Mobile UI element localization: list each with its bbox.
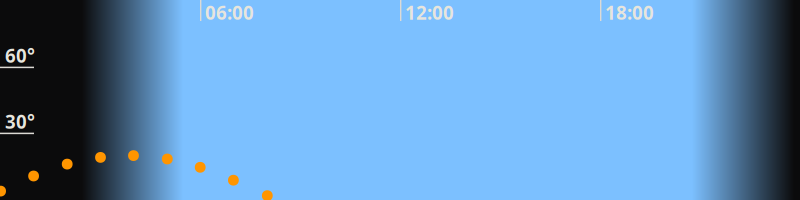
button[interactable]: Sun elevation chart [0, 0, 800, 200]
staticText: 60° [5, 43, 35, 68]
staticText: 18:00 [605, 0, 654, 25]
staticText: 12:00 [405, 0, 454, 25]
staticText: 06:00 [205, 0, 254, 25]
staticText: 30° [5, 109, 35, 134]
